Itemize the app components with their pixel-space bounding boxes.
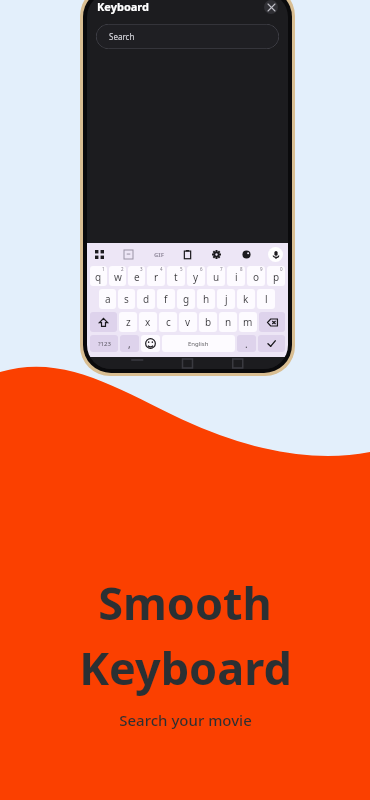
- button[interactable]: f: [157, 289, 175, 309]
- button[interactable]: z: [119, 312, 137, 332]
- staticText: c: [166, 315, 171, 329]
- staticText: g: [183, 292, 190, 306]
- button[interactable]: .: [237, 335, 256, 352]
- button[interactable]: y: [187, 266, 205, 286]
- staticText: k: [243, 292, 249, 306]
- staticText: 7: [220, 266, 223, 272]
- button[interactable]: e: [128, 266, 145, 286]
- button[interactable]: u: [207, 266, 225, 286]
- button[interactable]: Voice input: [268, 247, 283, 262]
- button[interactable]: v: [179, 312, 197, 332]
- staticText: 4: [160, 266, 163, 272]
- staticText: Keyboard: [79, 637, 292, 698]
- staticText: m: [243, 315, 253, 329]
- staticText: n: [225, 315, 232, 329]
- staticText: t: [174, 270, 178, 284]
- button[interactable]: r: [147, 266, 165, 286]
- button[interactable]: g: [177, 289, 195, 309]
- staticText: a: [105, 292, 111, 306]
- staticText: English: [188, 340, 209, 348]
- staticText: w: [114, 270, 122, 284]
- staticText: 0: [280, 266, 283, 272]
- button[interactable]: Clipboard: [180, 247, 195, 262]
- staticText: j: [225, 292, 228, 306]
- button[interactable]: b: [199, 312, 217, 332]
- staticText: q: [95, 270, 102, 284]
- staticText: z: [126, 315, 131, 329]
- button[interactable]: Shift: [90, 312, 117, 332]
- staticText: .: [245, 337, 248, 351]
- staticText: u: [213, 270, 220, 284]
- staticText: r: [154, 270, 159, 284]
- staticText: ,: [128, 337, 131, 351]
- staticText: o: [253, 270, 260, 284]
- button[interactable]: Settings: [209, 247, 224, 262]
- staticText: GIF: [154, 251, 164, 259]
- staticText: d: [143, 292, 150, 306]
- staticText: p: [273, 270, 280, 284]
- staticText: v: [185, 315, 191, 329]
- button[interactable]: o: [247, 266, 265, 286]
- button[interactable]: d: [137, 289, 155, 309]
- staticText: f: [164, 292, 168, 306]
- button[interactable]: Theme: [239, 247, 254, 262]
- button[interactable]: ?123: [90, 335, 118, 352]
- staticText: 9: [260, 266, 263, 272]
- staticText: ?123: [98, 340, 111, 348]
- button[interactable]: Stickers: [121, 247, 136, 262]
- staticText: 5: [180, 266, 183, 272]
- staticText: s: [124, 292, 129, 306]
- staticText: 3: [140, 266, 143, 272]
- button[interactable]: Search: [96, 24, 279, 49]
- button[interactable]: ,: [120, 335, 139, 352]
- staticText: h: [203, 292, 210, 306]
- staticText: l: [265, 292, 268, 306]
- button[interactable]: s: [118, 289, 135, 309]
- staticText: y: [193, 270, 199, 284]
- staticText: 6: [200, 266, 203, 272]
- button[interactable]: Apps: [92, 247, 107, 262]
- button[interactable]: Emoji: [141, 335, 160, 352]
- button[interactable]: m: [239, 312, 257, 332]
- button[interactable]: Enter: [258, 335, 285, 352]
- button[interactable]: l: [257, 289, 275, 309]
- button[interactable]: c: [159, 312, 177, 332]
- button[interactable]: q: [90, 266, 107, 286]
- staticText: Search your movie: [119, 710, 252, 730]
- button[interactable]: k: [237, 289, 255, 309]
- button[interactable]: n: [219, 312, 237, 332]
- staticText: e: [134, 270, 140, 284]
- button[interactable]: a: [99, 289, 116, 309]
- button[interactable]: Close: [264, 0, 278, 14]
- button[interactable]: x: [139, 312, 157, 332]
- staticText: b: [205, 315, 212, 329]
- button[interactable]: w: [109, 266, 126, 286]
- button[interactable]: j: [217, 289, 235, 309]
- button[interactable]: i: [227, 266, 245, 286]
- staticText: 2: [121, 266, 124, 272]
- button[interactable]: English: [162, 335, 235, 352]
- staticText: 1: [102, 266, 105, 272]
- button[interactable]: GIF: [151, 247, 166, 262]
- staticText: Keyboard: [97, 0, 149, 14]
- button[interactable]: h: [197, 289, 215, 309]
- button[interactable]: t: [167, 266, 185, 286]
- staticText: Search: [109, 31, 135, 42]
- staticText: Smooth: [98, 572, 272, 633]
- button[interactable]: p: [267, 266, 285, 286]
- button[interactable]: Backspace: [259, 312, 285, 332]
- staticText: 8: [240, 266, 243, 272]
- staticText: x: [145, 315, 151, 329]
- staticText: i: [235, 270, 238, 284]
